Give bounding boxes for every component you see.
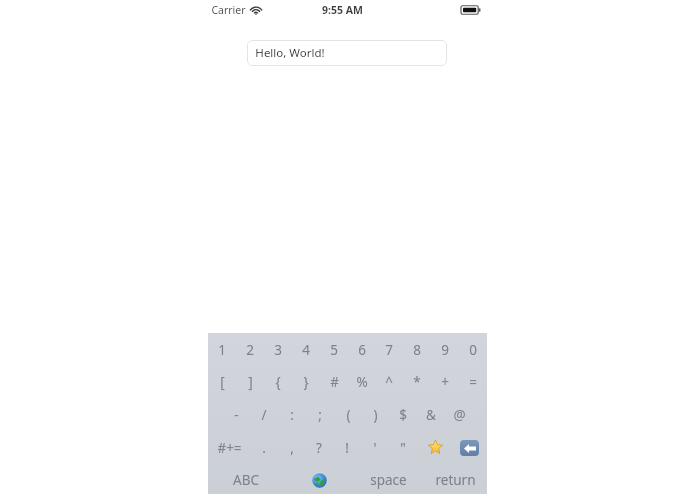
button[interactable]: 2 <box>236 337 264 363</box>
staticText: & <box>426 406 436 424</box>
button[interactable]: [ <box>208 369 236 395</box>
button[interactable]: ] <box>236 369 264 395</box>
button[interactable]: return <box>423 466 487 494</box>
button[interactable]: 8 <box>403 337 431 363</box>
staticText: . <box>262 439 266 457</box>
button[interactable]: } <box>292 369 320 395</box>
staticText: ABC <box>233 471 259 489</box>
staticText: # <box>330 373 339 391</box>
button[interactable]: 1 <box>208 337 236 363</box>
staticText: 6 <box>358 341 366 359</box>
staticText: = <box>469 373 477 391</box>
button[interactable]: ^ <box>375 369 403 395</box>
staticText: 7 <box>385 341 393 359</box>
staticText: * <box>413 373 421 391</box>
staticText: 0 <box>469 341 477 359</box>
staticText: 4 <box>302 341 310 359</box>
staticText: , <box>290 439 294 457</box>
staticText: ) <box>373 406 378 424</box>
staticText: } <box>303 373 309 391</box>
button[interactable]: Emoji star <box>420 434 450 461</box>
button[interactable]: #+= <box>208 434 250 461</box>
button[interactable]: : <box>278 402 306 428</box>
staticText: ; <box>318 406 322 424</box>
staticText: 9:55 AM <box>322 3 363 17</box>
staticText: $ <box>399 406 407 424</box>
button[interactable]: . <box>250 434 278 461</box>
button[interactable]: / <box>250 402 278 428</box>
button[interactable]: ? <box>305 434 333 461</box>
button[interactable]: Next keyboard <box>298 466 340 494</box>
staticText: 2 <box>246 341 254 359</box>
button[interactable]: 7 <box>375 337 403 363</box>
staticText: 9 <box>441 341 449 359</box>
staticText: @ <box>453 406 466 424</box>
button[interactable]: " <box>389 434 417 461</box>
button[interactable]: ! <box>333 434 361 461</box>
button[interactable]: space <box>353 466 423 494</box>
staticText: 3 <box>274 341 282 359</box>
button[interactable]: @ <box>445 402 473 428</box>
staticText: ! <box>345 439 349 457</box>
button[interactable]: + <box>431 369 459 395</box>
button[interactable]: ' <box>361 434 389 461</box>
staticText: + <box>441 373 449 391</box>
button[interactable]: , <box>278 434 306 461</box>
staticText: - <box>234 406 239 424</box>
staticText: Hello, World! <box>255 45 325 61</box>
staticText: 5 <box>330 341 338 359</box>
staticText: Carrier <box>211 3 246 17</box>
button[interactable]: 3 <box>264 337 292 363</box>
button[interactable]: 4 <box>292 337 320 363</box>
button[interactable]: 5 <box>320 337 348 363</box>
button[interactable]: - <box>222 402 250 428</box>
button[interactable]: = <box>459 369 487 395</box>
button[interactable]: 6 <box>348 337 376 363</box>
button[interactable]: Hello, World! <box>247 40 447 66</box>
button[interactable]: % <box>348 369 376 395</box>
button[interactable]: ; <box>306 402 334 428</box>
staticText: #+= <box>217 439 242 457</box>
button[interactable]: ABC <box>214 466 278 494</box>
button[interactable]: ( <box>334 402 362 428</box>
staticText: 8 <box>413 341 421 359</box>
staticText: : <box>290 406 294 424</box>
button[interactable]: 9 <box>431 337 459 363</box>
button[interactable]: 0 <box>459 337 487 363</box>
staticText: 1 <box>218 341 226 359</box>
staticText: { <box>275 373 281 391</box>
staticText: ' <box>373 439 377 457</box>
button[interactable]: # <box>320 369 348 395</box>
button[interactable]: $ <box>389 402 417 428</box>
button[interactable]: * <box>403 369 431 395</box>
button[interactable]: & <box>417 402 445 428</box>
button[interactable]: Backspace <box>451 434 487 461</box>
staticText: ^ <box>385 373 393 391</box>
staticText: % <box>356 373 368 391</box>
staticText: " <box>400 439 406 457</box>
staticText: ( <box>346 406 351 424</box>
staticText: ? <box>316 439 322 457</box>
staticText: return <box>435 471 476 489</box>
staticText: space <box>370 471 407 489</box>
staticText: / <box>261 406 267 424</box>
button[interactable]: { <box>264 369 292 395</box>
button[interactable]: ) <box>361 402 389 428</box>
staticText: [ <box>220 373 225 391</box>
staticText: ] <box>248 373 253 391</box>
